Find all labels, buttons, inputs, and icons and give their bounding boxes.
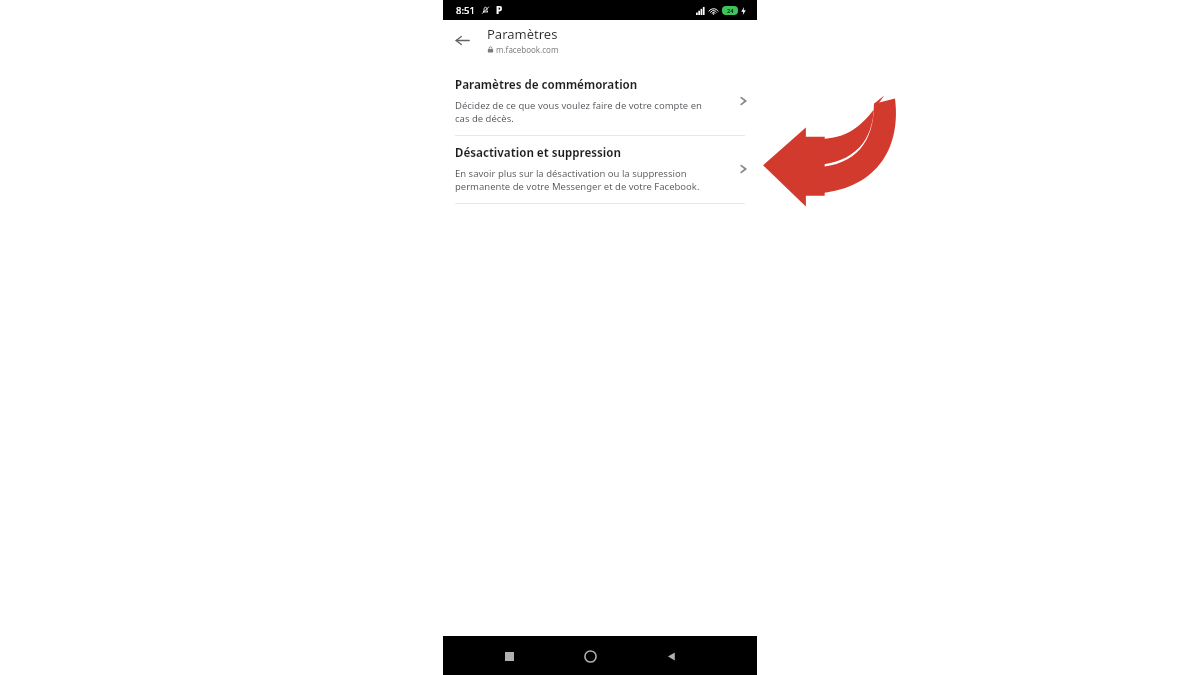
staticText: 24 <box>727 7 734 14</box>
staticText: permanente de votre Messenger et de votr… <box>455 180 700 193</box>
button[interactable]: Recents <box>494 641 524 671</box>
staticText: Désactivation et suppression <box>455 145 621 161</box>
staticText: m.facebook.com <box>496 44 559 55</box>
staticText: P <box>496 3 503 17</box>
staticText: cas de décès. <box>455 112 514 125</box>
button[interactable]: Back <box>449 27 475 53</box>
button[interactable]: Home <box>575 641 605 671</box>
button[interactable]: Back <box>656 641 686 671</box>
button[interactable]: Désactivation et suppression <box>443 136 757 203</box>
staticText: Décidez de ce que vous voulez faire de v… <box>455 99 702 112</box>
staticText: Paramètres <box>487 25 558 43</box>
button[interactable]: Paramètres de commémoration <box>443 68 757 135</box>
staticText: En savoir plus sur la désactivation ou l… <box>455 167 687 180</box>
staticText: 8:51 <box>456 4 475 17</box>
staticText: Paramètres de commémoration <box>455 77 638 93</box>
